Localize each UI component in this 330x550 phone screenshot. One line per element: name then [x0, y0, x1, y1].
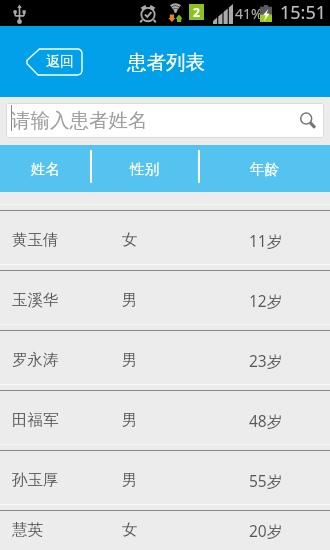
staticText: 男: [122, 350, 138, 370]
staticText: 15:51: [280, 0, 327, 25]
button[interactable]: 罗永涛: [0, 330, 330, 390]
staticText: 2: [193, 4, 200, 20]
staticText: 男: [122, 410, 138, 430]
staticText: 患者列表: [127, 50, 205, 75]
staticText: 姓名: [31, 160, 60, 178]
button[interactable]: 玉溪华: [0, 270, 330, 330]
button[interactable]: 黄玉倩: [0, 210, 330, 270]
staticText: 23岁: [249, 350, 283, 371]
staticText: 女: [122, 230, 138, 250]
staticText: 48岁: [249, 410, 283, 431]
staticText: 55岁: [249, 470, 283, 491]
staticText: 黄玉倩: [12, 230, 59, 250]
button[interactable]: 返回: [27, 49, 82, 75]
staticText: 请输入患者姓名: [11, 108, 148, 133]
button[interactable]: 田福军: [0, 390, 330, 450]
staticText: 女: [122, 520, 138, 540]
staticText: 41%: [235, 4, 263, 23]
button[interactable]: 请输入患者姓名: [6, 103, 324, 138]
staticText: 罗永涛: [12, 350, 59, 370]
staticText: 返回: [46, 53, 74, 71]
staticText: 男: [122, 470, 138, 490]
button[interactable]: 孙玉厚: [0, 450, 330, 510]
staticText: 玉溪华: [12, 290, 59, 310]
staticText: 田福军: [12, 410, 59, 430]
staticText: 20岁: [249, 520, 283, 541]
staticText: 孙玉厚: [12, 470, 59, 490]
staticText: 11岁: [249, 230, 283, 251]
staticText: 男: [122, 290, 138, 310]
staticText: 年龄: [250, 160, 279, 178]
staticText: 性别: [130, 160, 159, 178]
staticText: 慧英: [12, 520, 43, 540]
staticText: 12岁: [249, 290, 283, 311]
button[interactable]: 慧英: [0, 510, 330, 550]
